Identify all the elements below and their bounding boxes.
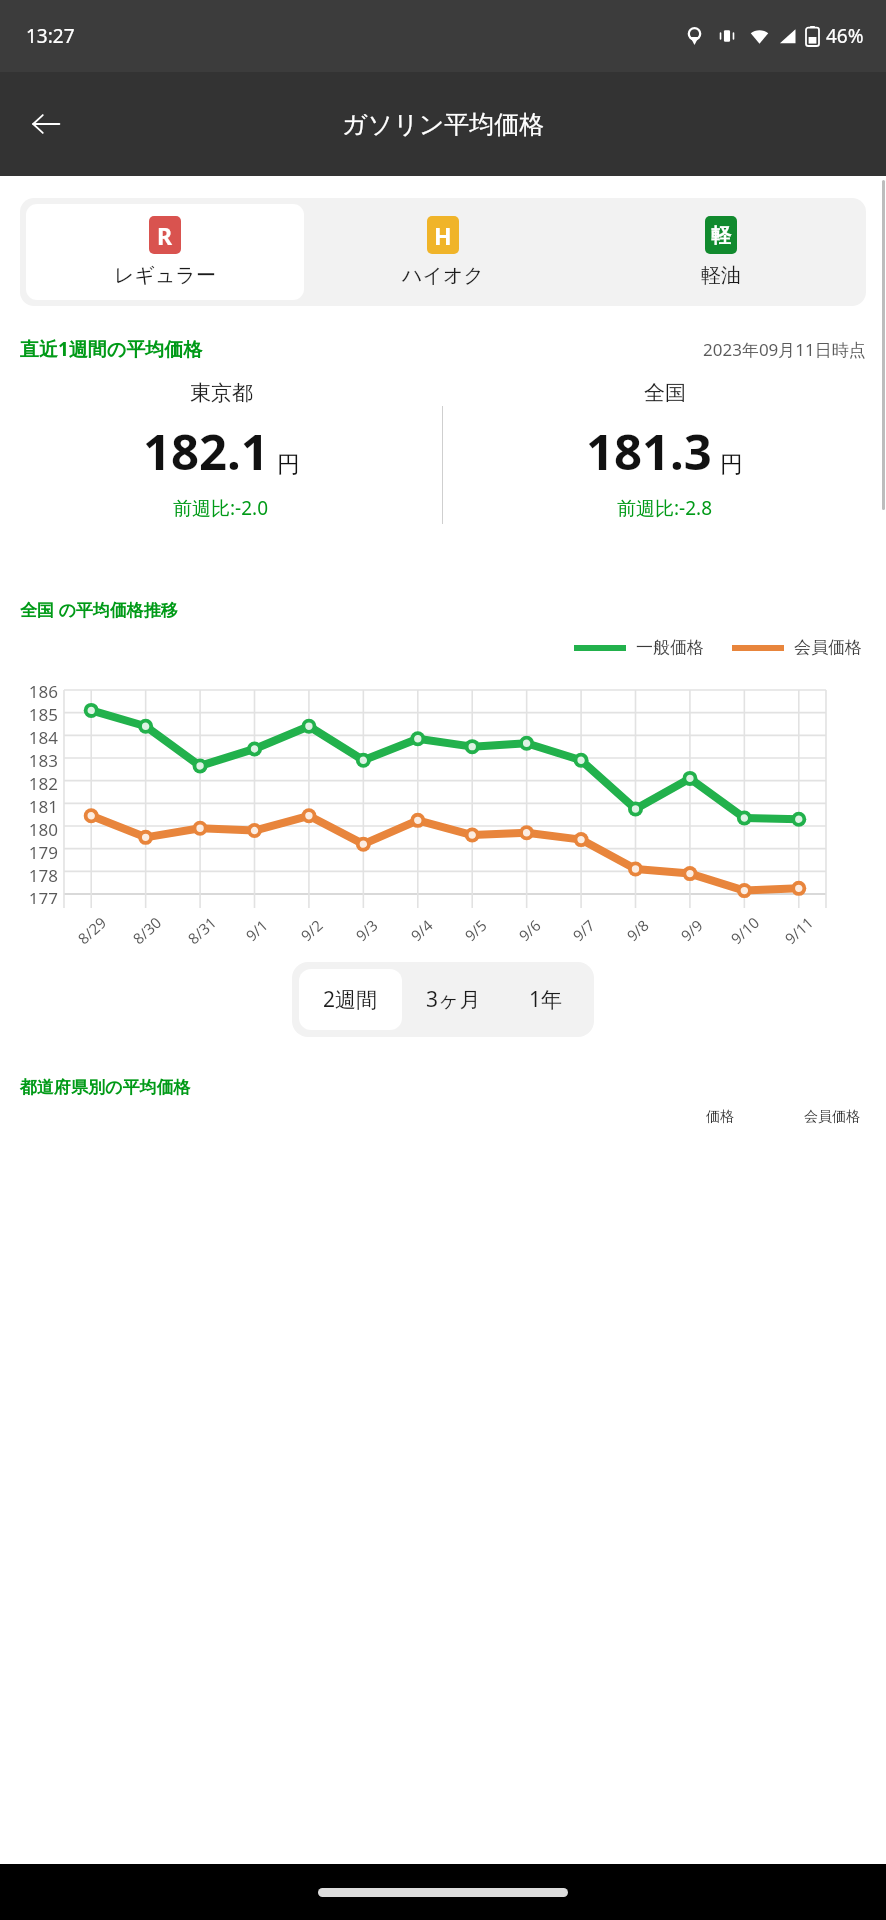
staticText: R [157, 220, 173, 251]
staticText: 8/30 [128, 912, 166, 948]
staticText: 178 [28, 864, 58, 887]
staticText: 185 [28, 703, 58, 726]
staticText: 全国 [644, 380, 686, 406]
staticText: 2週間 [323, 985, 378, 1014]
staticText: 9/11 [780, 912, 818, 948]
staticText: 全国 の平均価格推移 [20, 598, 178, 621]
staticText: 8/29 [73, 912, 111, 948]
staticText: 円 [277, 450, 300, 479]
staticText: 182 [28, 772, 58, 795]
staticText: 軽 [711, 223, 731, 248]
staticText: 8/31 [183, 912, 221, 948]
staticText: 3ヶ月 [426, 985, 481, 1014]
staticText: 前週比:-2.8 [617, 495, 713, 521]
button[interactable]: 3ヶ月 [402, 969, 505, 1030]
staticText: 182.1 [143, 418, 269, 485]
staticText: 9/1 [241, 915, 272, 945]
staticText: 180 [28, 818, 58, 841]
staticText: 9/6 [514, 915, 545, 945]
staticText: 1年 [529, 985, 563, 1014]
staticText: 軽油 [701, 263, 741, 288]
staticText: 9/3 [351, 915, 382, 945]
staticText: 9/8 [622, 915, 653, 945]
staticText: 181.3 [586, 418, 712, 485]
staticText: 9/5 [460, 915, 491, 945]
staticText: ハイオク [402, 263, 484, 288]
staticText: レギュラー [114, 263, 216, 288]
button[interactable]: R [26, 204, 304, 300]
staticText: 183 [28, 749, 58, 772]
staticText: 前週比:-2.0 [173, 495, 269, 521]
staticText: 会員価格 [804, 1108, 860, 1126]
staticText: 都道府県別の平均価格 [20, 1077, 191, 1098]
staticText: 9/2 [296, 915, 327, 945]
staticText: 184 [28, 726, 58, 749]
button[interactable]: 1年 [505, 969, 587, 1030]
button[interactable]: 軽 [582, 204, 860, 300]
staticText: 179 [28, 841, 58, 864]
staticText: 一般価格 [636, 637, 704, 658]
staticText: 9/9 [676, 915, 707, 945]
staticText: 9/7 [568, 915, 599, 945]
button[interactable]: H [304, 204, 582, 300]
button[interactable]: 2週間 [299, 969, 402, 1030]
staticText: ガソリン平均価格 [342, 109, 545, 140]
button[interactable]: Back [18, 96, 74, 152]
staticText: 9/4 [406, 915, 437, 945]
staticText: 円 [720, 450, 743, 479]
staticText: 2023年09月11日時点 [703, 338, 866, 361]
staticText: 181 [28, 795, 58, 818]
staticText: 9/10 [726, 912, 764, 948]
staticText: 直近1週間の平均価格 [20, 336, 203, 362]
staticText: 価格 [706, 1108, 734, 1126]
staticText: 13:27 [26, 23, 75, 49]
staticText: 会員価格 [794, 637, 862, 658]
staticText: 177 [28, 887, 58, 904]
staticText: 46% [826, 23, 864, 49]
staticText: H [434, 220, 452, 251]
staticText: 186 [28, 680, 58, 703]
staticText: 東京都 [190, 380, 253, 406]
